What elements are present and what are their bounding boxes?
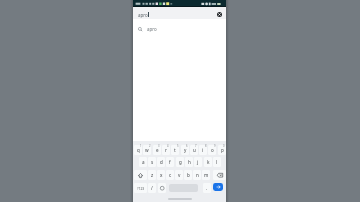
button[interactable]: v — [175, 170, 183, 180]
button[interactable]: ?123 — [134, 183, 147, 193]
button[interactable]: d — [157, 157, 165, 167]
staticText: c — [169, 172, 172, 178]
staticText: w — [145, 147, 149, 153]
staticText: 9 — [214, 144, 216, 148]
staticText: 3 — [158, 144, 160, 148]
button[interactable]: p — [218, 145, 226, 155]
staticText: v — [178, 172, 181, 178]
button[interactable]: z — [148, 170, 156, 180]
button[interactable]: h — [185, 157, 193, 167]
staticText: s — [151, 159, 154, 165]
button[interactable]: j — [194, 157, 202, 167]
staticText: . — [206, 185, 208, 191]
button[interactable]: u — [190, 145, 198, 155]
button[interactable]: apro — [133, 7, 226, 19]
button[interactable]: . — [203, 183, 211, 193]
button[interactable] — [217, 12, 222, 17]
staticText: e — [156, 147, 159, 153]
staticText: / — [151, 185, 153, 191]
staticText: z — [151, 172, 154, 178]
staticText: 6 — [186, 144, 188, 148]
staticText: apro — [138, 12, 148, 18]
button[interactable]: q — [134, 145, 142, 155]
staticText: p — [221, 147, 224, 153]
staticText: 2 — [149, 144, 151, 148]
button[interactable]: r — [162, 145, 170, 155]
button[interactable]: apro — [133, 23, 226, 35]
button[interactable]: x — [157, 170, 165, 180]
staticText: 5 — [177, 144, 179, 148]
button[interactable]: k — [204, 157, 212, 167]
button[interactable]: m — [202, 170, 210, 180]
staticText: 8 — [205, 144, 207, 148]
staticText: m — [204, 172, 209, 178]
staticText: n — [196, 172, 199, 178]
staticText: i — [202, 147, 204, 153]
staticText: x — [160, 172, 163, 178]
button[interactable]: s — [148, 157, 156, 167]
staticText: y — [184, 147, 187, 153]
button[interactable]: e — [153, 145, 161, 155]
button[interactable]: b — [184, 170, 192, 180]
button[interactable]: y — [181, 145, 189, 155]
staticText: b — [187, 172, 190, 178]
button[interactable]: l — [213, 157, 221, 167]
button[interactable]: w — [143, 145, 151, 155]
staticText: 7 — [195, 144, 197, 148]
staticText: g — [179, 159, 182, 165]
button[interactable]: t — [171, 145, 179, 155]
button[interactable]: n — [193, 170, 201, 180]
staticText: f — [169, 159, 171, 165]
staticText: l — [216, 159, 218, 165]
button[interactable]: i — [199, 145, 207, 155]
button[interactable] — [213, 183, 223, 191]
button[interactable] — [134, 170, 147, 180]
button[interactable]: c — [166, 170, 174, 180]
staticText: 4 — [167, 144, 169, 148]
staticText: apro — [147, 26, 157, 32]
button[interactable]: a — [139, 157, 147, 167]
staticText: 1 — [140, 144, 142, 148]
staticText: r — [165, 147, 167, 153]
button[interactable]: / — [148, 183, 156, 193]
staticText: d — [160, 159, 163, 165]
staticText: k — [207, 159, 210, 165]
staticText: j — [197, 159, 199, 165]
staticText: u — [193, 147, 196, 153]
staticText: ?123 — [137, 186, 145, 191]
button[interactable]: f — [166, 157, 174, 167]
button[interactable] — [158, 183, 166, 193]
staticText: t — [174, 147, 176, 153]
staticText: 0 — [223, 144, 225, 148]
button[interactable]: o — [208, 145, 216, 155]
staticText: h — [188, 159, 191, 165]
staticText: o — [211, 147, 214, 153]
staticText: a — [142, 159, 145, 165]
button[interactable]: g — [176, 157, 184, 167]
staticText: q — [137, 147, 140, 153]
button[interactable] — [213, 170, 226, 180]
